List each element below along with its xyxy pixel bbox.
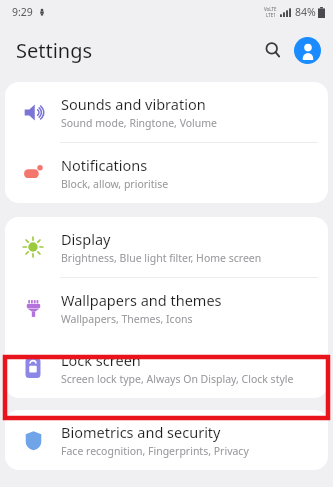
button[interactable]: Search — [258, 35, 288, 65]
button[interactable]: Wallpapers and themes — [5, 278, 328, 338]
staticText: Settings — [16, 37, 93, 64]
staticText: Brightness, Blue light filter, Home scre… — [61, 251, 262, 265]
staticText: Block, allow, prioritise — [61, 177, 169, 191]
staticText: Face recognition, Fingerprints, Privacy — [61, 444, 249, 458]
staticText: Screen lock type, Always On Display, Clo… — [61, 372, 294, 386]
button[interactable]: Lock screen — [5, 338, 328, 398]
button[interactable]: Display — [5, 217, 328, 277]
staticText: Sound mode, Ringtone, Volume — [61, 116, 218, 130]
button[interactable]: Sounds and vibration — [5, 82, 328, 142]
staticText: Sounds and vibration — [61, 94, 206, 114]
staticText: 9:29 — [12, 5, 33, 19]
button[interactable]: Notifications — [5, 143, 328, 203]
staticText: 84% — [295, 5, 316, 19]
staticText: Biometrics and security — [61, 422, 221, 442]
button[interactable]: Account — [294, 37, 321, 64]
staticText: LTE1 — [266, 12, 276, 18]
staticText: Lock screen — [61, 350, 141, 370]
staticText: Wallpapers and themes — [61, 290, 222, 310]
staticText: Wallpapers, Themes, Icons — [61, 312, 193, 326]
staticText: VoLTE — [264, 6, 277, 12]
staticText: Notifications — [61, 155, 148, 175]
staticText: Display — [61, 229, 111, 249]
button[interactable]: Biometrics and security — [5, 410, 328, 470]
